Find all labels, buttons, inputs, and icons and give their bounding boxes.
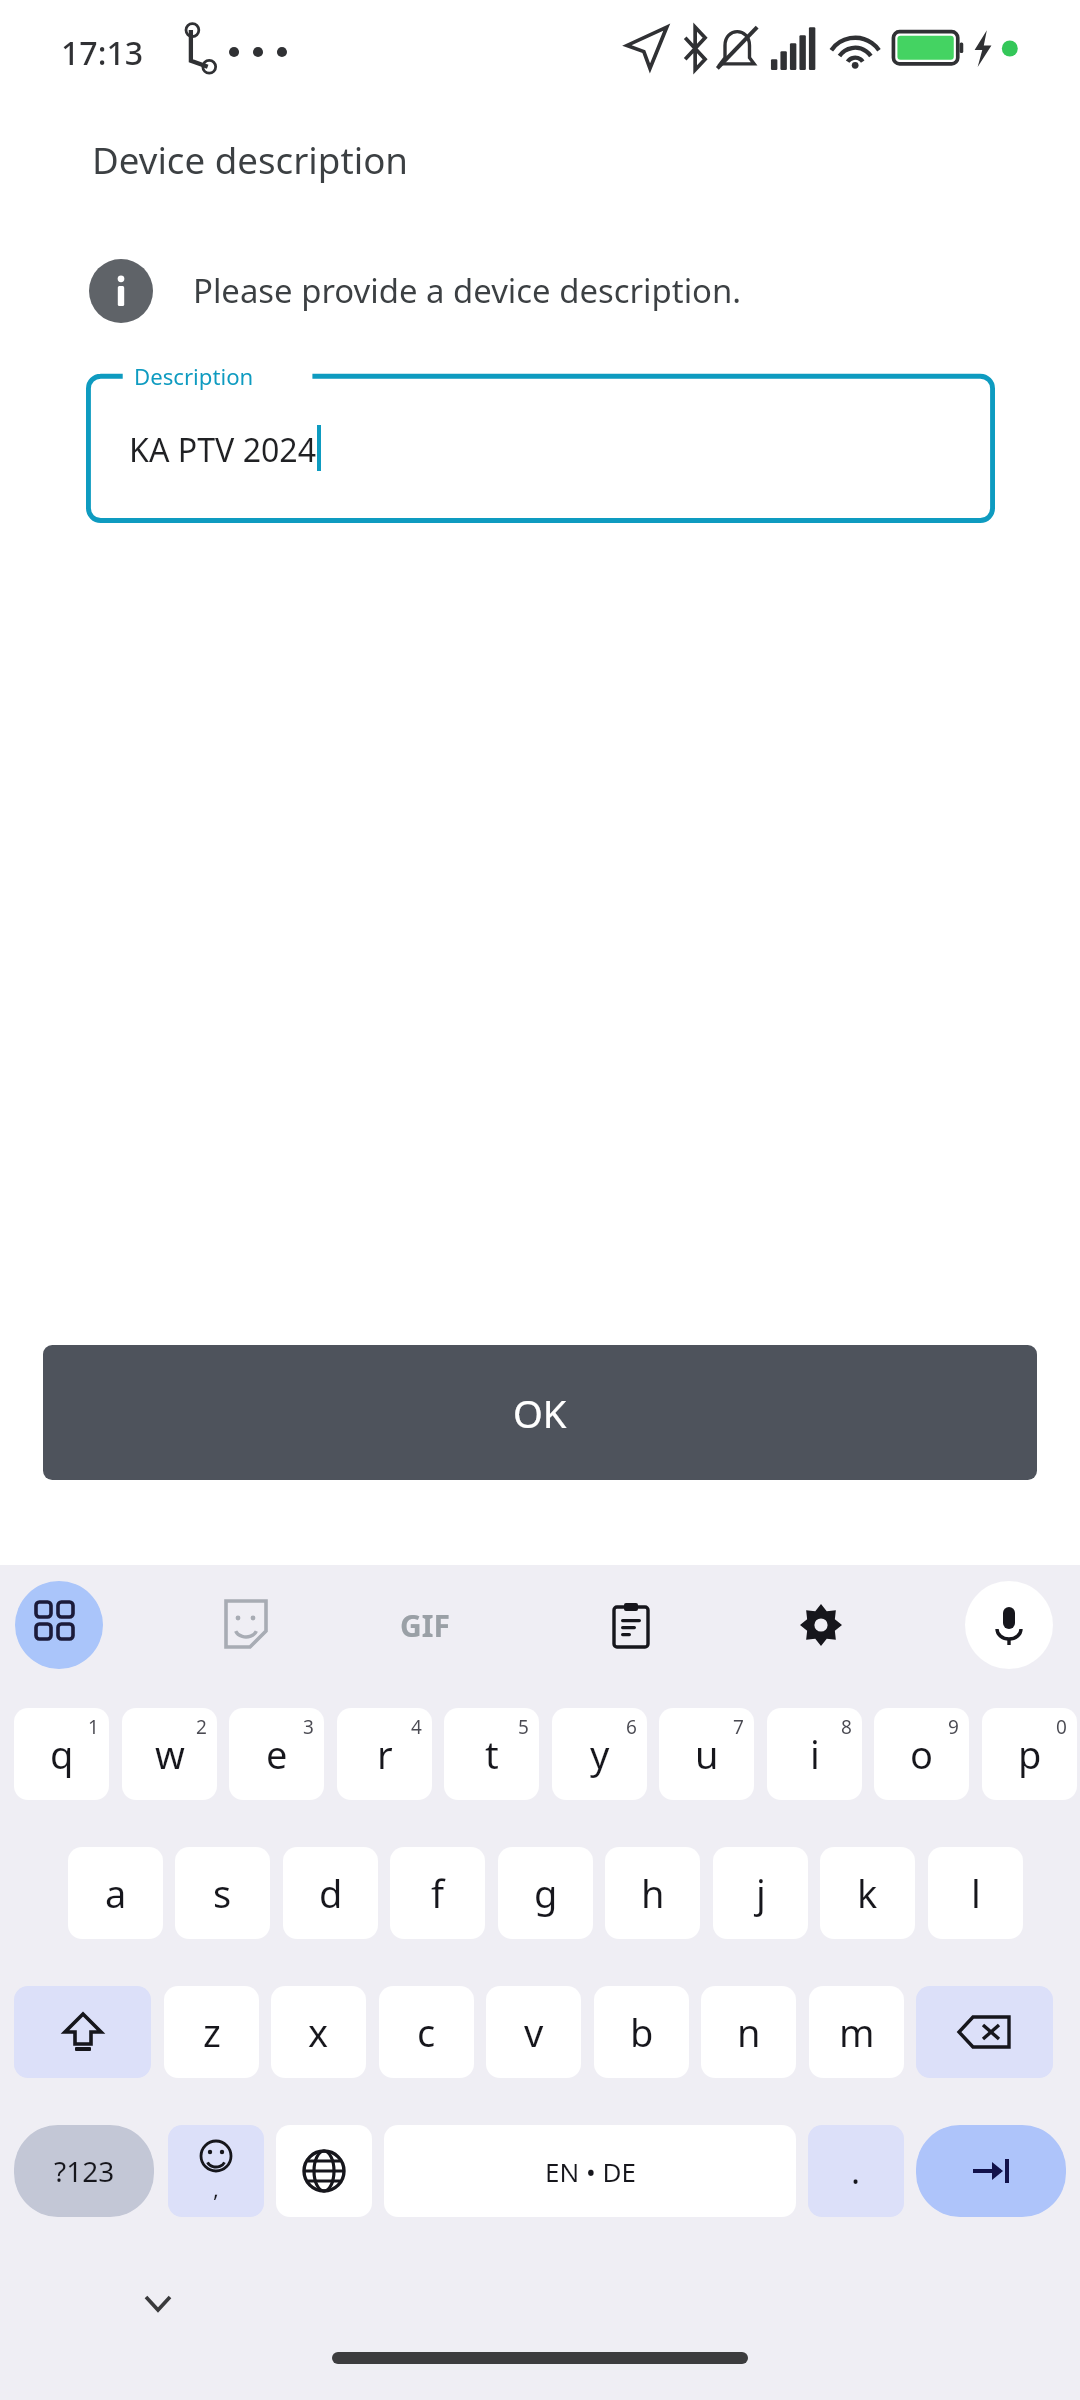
button[interactable]: e (229, 1708, 324, 1800)
staticText: 6 (626, 1714, 637, 1740)
staticText: 3 (303, 1714, 314, 1740)
staticText: t (485, 1728, 499, 1780)
button[interactable]: f (390, 1847, 485, 1939)
staticText: z (203, 2006, 221, 2058)
button[interactable]: u (659, 1708, 754, 1800)
button[interactable]: c (379, 1986, 474, 2078)
staticText: n (737, 2006, 761, 2058)
staticText: ?123 (54, 2152, 115, 2190)
staticText: 5 (518, 1714, 529, 1740)
staticText: b (630, 2006, 654, 2058)
button[interactable]: Clipboard (595, 1589, 667, 1661)
button[interactable]: l (928, 1847, 1023, 1939)
button[interactable]: Backspace (916, 1986, 1053, 2078)
button[interactable]: q (14, 1708, 109, 1800)
button[interactable]: Emoji (168, 2125, 264, 2217)
staticText: a (105, 1867, 127, 1919)
button[interactable]: t (444, 1708, 539, 1800)
button[interactable]: ?123 (14, 2125, 154, 2217)
staticText: o (910, 1728, 933, 1780)
staticText: l (971, 1867, 981, 1919)
staticText: d (319, 1867, 343, 1919)
button[interactable]: d (283, 1847, 378, 1939)
staticText: f (431, 1867, 445, 1919)
staticText: m (839, 2006, 875, 2058)
staticText: y (590, 1728, 610, 1780)
staticText: k (857, 1867, 878, 1919)
button[interactable]: . (808, 2125, 904, 2217)
button[interactable]: k (820, 1847, 915, 1939)
button[interactable]: Change language (276, 2125, 372, 2217)
staticText: 0 (1056, 1714, 1067, 1740)
staticText: Please provide a device description. (193, 268, 742, 313)
button[interactable]: Shift (14, 1986, 151, 2078)
button[interactable]: b (594, 1986, 689, 2078)
staticText: x (308, 2006, 329, 2058)
staticText: s (213, 1867, 232, 1919)
staticText: 7 (733, 1714, 744, 1740)
button[interactable]: GIF (380, 1589, 470, 1661)
button[interactable]: j (713, 1847, 808, 1939)
staticText: h (641, 1867, 665, 1919)
staticText: u (695, 1728, 719, 1780)
staticText: GIF (400, 1605, 450, 1646)
staticText: 9 (948, 1714, 959, 1740)
staticText: Device description (92, 135, 409, 185)
staticText: j (756, 1867, 766, 1919)
staticText: 4 (411, 1714, 422, 1740)
button[interactable]: OK (43, 1345, 1037, 1480)
button[interactable]: a (68, 1847, 163, 1939)
button[interactable]: EN • DE (384, 2125, 796, 2217)
staticText: Description (134, 361, 254, 391)
button[interactable]: Apps (15, 1581, 103, 1669)
button[interactable]: Description (86, 364, 995, 523)
staticText: 17:13 (61, 31, 144, 75)
button[interactable]: z (164, 1986, 259, 2078)
staticText: e (266, 1728, 288, 1780)
button[interactable]: p (982, 1708, 1077, 1800)
button[interactable]: g (498, 1847, 593, 1939)
button[interactable]: Stickers (210, 1589, 282, 1661)
button[interactable]: s (175, 1847, 270, 1939)
staticText: r (377, 1728, 393, 1780)
staticText: 1 (88, 1714, 99, 1740)
button[interactable]: Hide keyboard (118, 2268, 198, 2338)
button[interactable]: y (552, 1708, 647, 1800)
staticText: g (534, 1867, 558, 1919)
staticText: p (1018, 1728, 1042, 1780)
staticText: KA PTV 2024 (129, 428, 317, 472)
button[interactable]: o (874, 1708, 969, 1800)
button[interactable]: n (701, 1986, 796, 2078)
button[interactable]: Settings (785, 1589, 857, 1661)
button[interactable]: m (809, 1986, 904, 2078)
staticText: . (851, 2148, 861, 2194)
staticText: EN • DE (545, 2154, 636, 2189)
staticText: i (810, 1728, 820, 1780)
button[interactable]: w (122, 1708, 217, 1800)
staticText: OK (513, 1387, 567, 1439)
staticText: , (213, 2173, 219, 2203)
button[interactable]: Voice input (965, 1581, 1053, 1669)
button[interactable]: v (486, 1986, 581, 2078)
button[interactable]: r (337, 1708, 432, 1800)
staticText: w (155, 1728, 185, 1780)
staticText: v (524, 2006, 544, 2058)
button[interactable]: i (767, 1708, 862, 1800)
staticText: c (417, 2006, 436, 2058)
button[interactable]: Next (916, 2125, 1066, 2217)
staticText: 2 (196, 1714, 207, 1740)
staticText: 8 (841, 1714, 852, 1740)
button[interactable]: x (271, 1986, 366, 2078)
button[interactable]: h (605, 1847, 700, 1939)
staticText: q (50, 1728, 74, 1780)
